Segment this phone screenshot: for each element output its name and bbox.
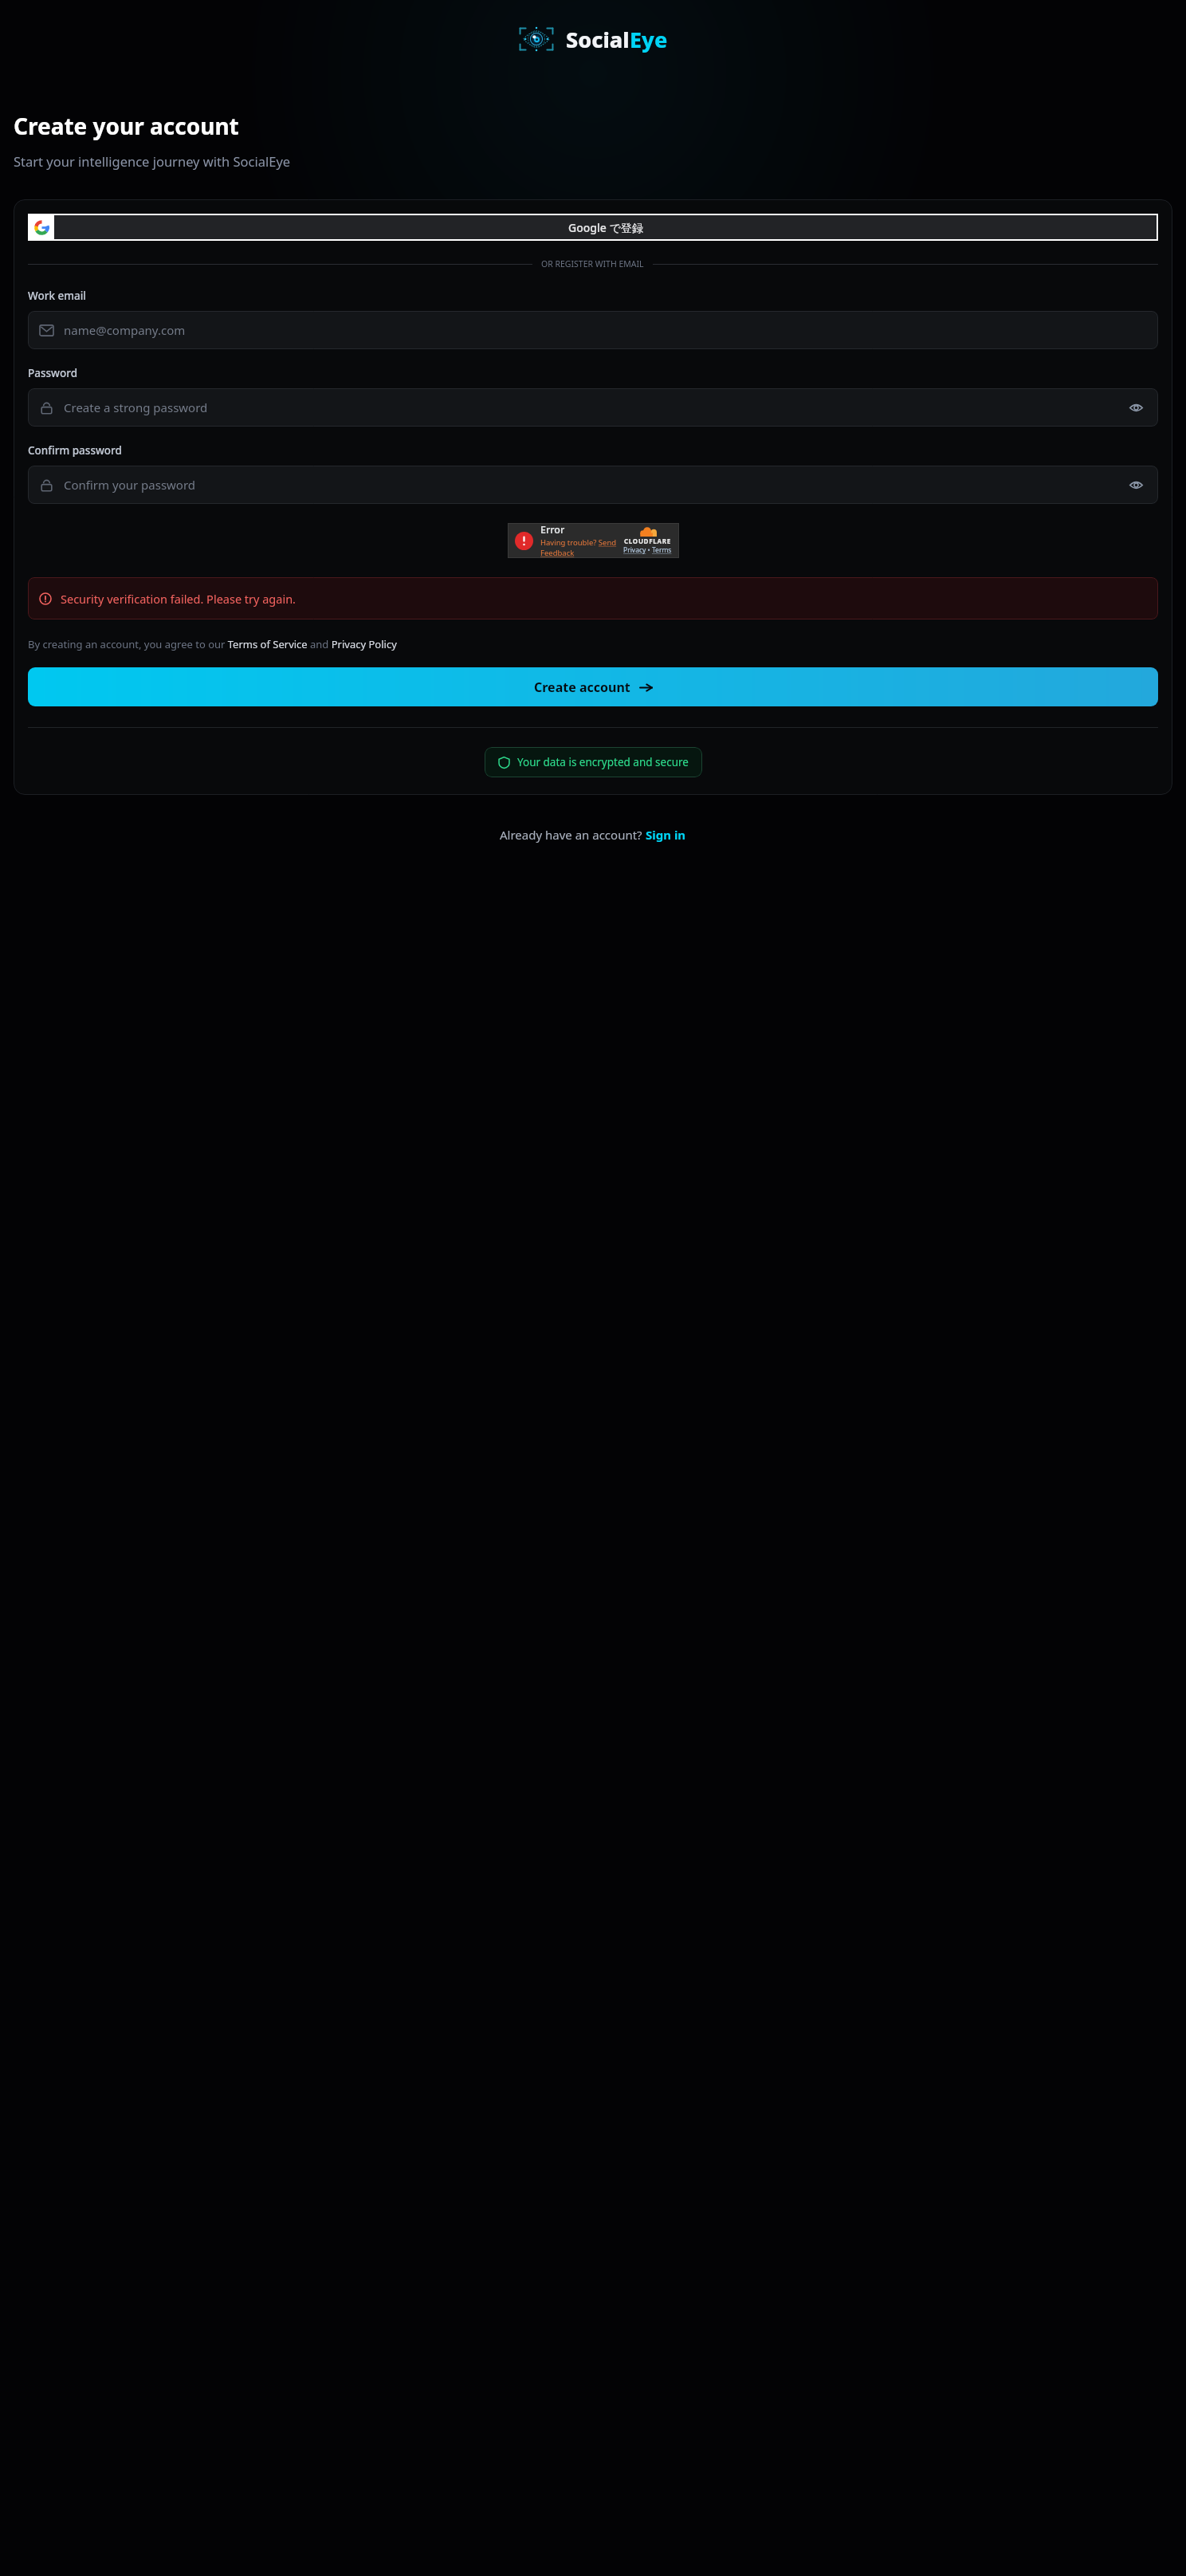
button[interactable]: Your data is encrypted and secure [485,747,702,777]
staticText: Start your intelligence journey with Soc… [14,152,291,170]
staticText: Create your account [14,111,239,141]
staticText: Your data is encrypted and secure [517,755,689,769]
button[interactable]: Confirm your password [28,466,1158,504]
staticText: Security verification failed. Please try… [61,591,296,607]
staticText: Error [540,523,565,537]
button[interactable]: Social [0,21,1186,57]
button[interactable]: Show password [1125,474,1146,495]
staticText: Confirm your password [64,477,1125,493]
staticText: Sign in [646,827,686,843]
staticText: Work email [28,289,86,303]
button[interactable]: Google で登録 [29,215,1157,239]
staticText: Google で登録 [568,220,643,235]
staticText: Create account [534,678,630,696]
button[interactable]: Create account [28,667,1158,706]
staticText: Eye [630,25,668,54]
staticText: Create a strong password [64,399,1125,415]
staticText: name@company.com [64,322,1146,338]
button[interactable]: Error [508,523,679,558]
button[interactable]: Show password [1125,397,1146,418]
staticText: CLOUDFLARE [624,537,671,545]
staticText: By creating an account, you agree to our… [28,637,397,651]
staticText: Confirm password [28,443,122,458]
button[interactable]: name@company.com [28,311,1158,349]
button[interactable]: Create a strong password [28,388,1158,427]
staticText: Social [566,25,630,54]
staticText: Already have an account? [500,827,646,843]
staticText: Privacy • Terms [623,545,672,555]
staticText: OR REGISTER WITH EMAIL [541,258,644,269]
staticText: Having trouble? Send Feedback [540,537,623,558]
button[interactable]: Already have an account? [0,827,1186,843]
staticText: Password [28,366,78,380]
